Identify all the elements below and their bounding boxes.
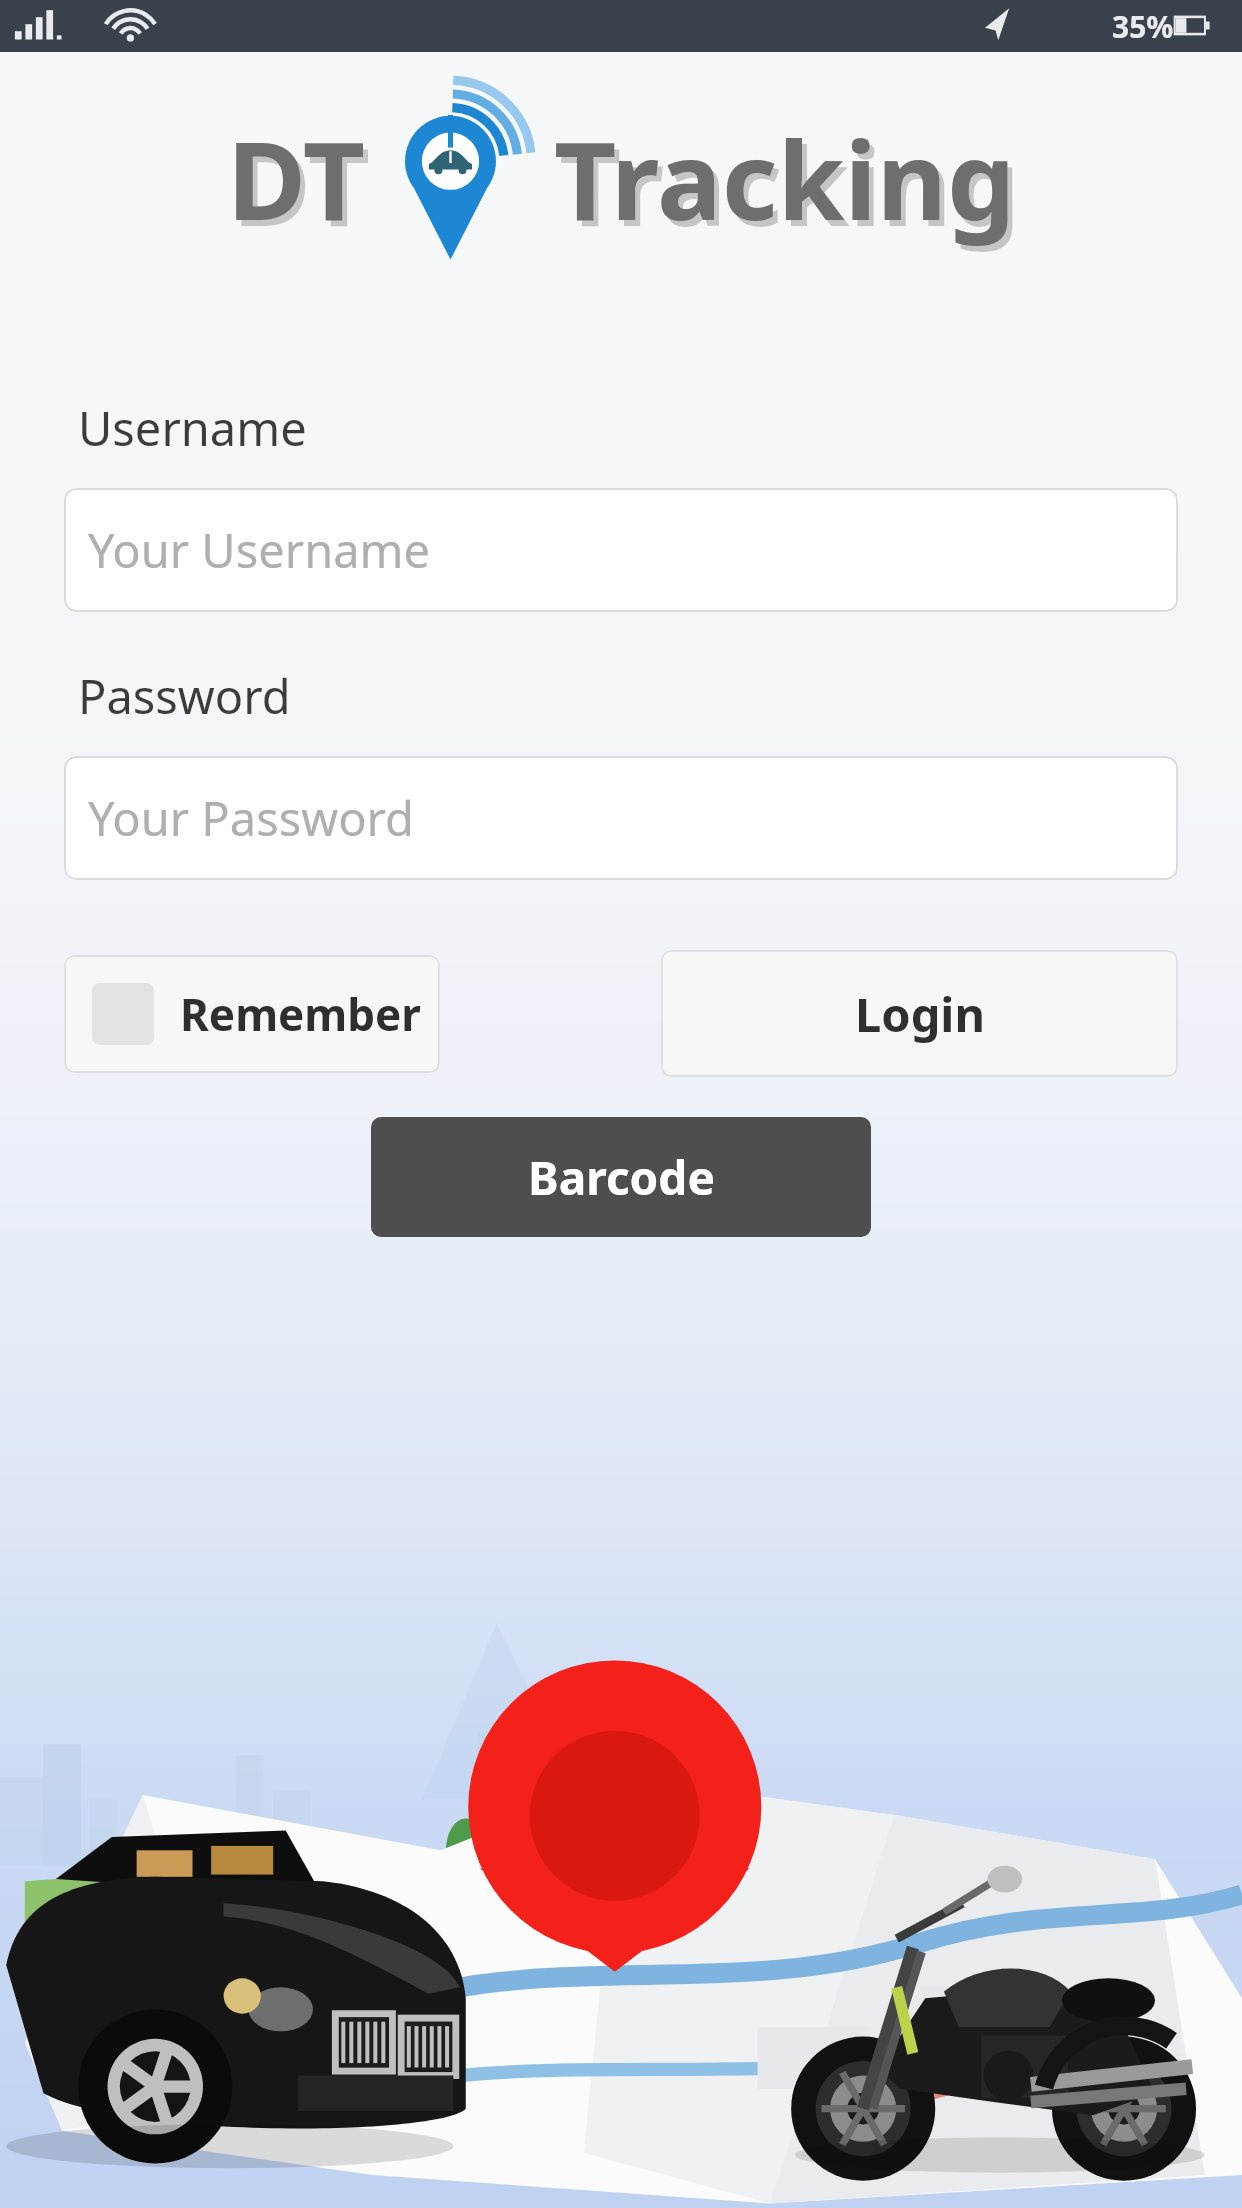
staticText: DT: [227, 105, 366, 252]
button[interactable]: Your Password: [64, 756, 1178, 880]
staticText: Your Password: [88, 786, 414, 850]
button[interactable]: Login: [661, 950, 1178, 1077]
staticText: 35%: [1112, 6, 1174, 47]
staticText: Login: [855, 982, 985, 1046]
staticText: Tracking: [559, 111, 1021, 258]
staticText: Username: [78, 396, 307, 460]
staticText: Remember: [180, 984, 421, 1044]
staticText: DT: [232, 111, 371, 258]
staticText: Tracking: [554, 105, 1016, 252]
staticText: Your Username: [88, 518, 431, 582]
staticText: Barcode: [528, 1146, 715, 1209]
staticText: Password: [78, 664, 291, 728]
button[interactable]: Remember: [64, 955, 440, 1073]
button[interactable]: Your Username: [64, 488, 1178, 612]
button[interactable]: Barcode: [371, 1117, 871, 1237]
